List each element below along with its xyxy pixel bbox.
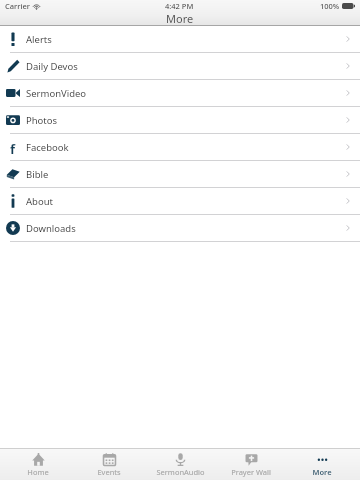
button[interactable]: Home <box>5 449 71 480</box>
staticText: Downloads <box>26 222 76 235</box>
staticText: Alerts <box>26 33 52 46</box>
staticText: Prayer Wall <box>231 467 271 477</box>
staticText: Carrier <box>5 1 30 11</box>
button[interactable]: Alerts <box>0 26 360 53</box>
button[interactable]: More <box>289 449 355 480</box>
button[interactable]: Prayer Wall <box>218 449 284 480</box>
staticText: f <box>10 140 16 154</box>
staticText: Events <box>97 467 121 477</box>
button[interactable]: Daily Devos <box>0 53 360 80</box>
staticText: Daily Devos <box>26 60 78 73</box>
button[interactable]: Events <box>76 449 142 480</box>
staticText: About <box>26 195 53 208</box>
button[interactable]: SermonAudio <box>147 449 213 480</box>
staticText: More <box>312 467 332 477</box>
button[interactable]: Bible <box>0 161 360 188</box>
staticText: Facebook <box>26 141 69 154</box>
button[interactable]: SermonVideo <box>0 80 360 107</box>
button[interactable]: Photos <box>0 107 360 134</box>
staticText: 100% <box>320 1 340 11</box>
staticText: SermonVideo <box>26 87 87 100</box>
button[interactable]: f <box>0 134 360 161</box>
staticText: Photos <box>26 114 58 127</box>
staticText: 4:42 PM <box>165 1 194 11</box>
staticText: SermonAudio <box>156 467 205 477</box>
staticText: Home <box>27 467 49 477</box>
button[interactable]: Downloads <box>0 215 360 242</box>
button[interactable]: About <box>0 188 360 215</box>
staticText: Bible <box>26 168 49 181</box>
staticText: More <box>166 11 194 26</box>
